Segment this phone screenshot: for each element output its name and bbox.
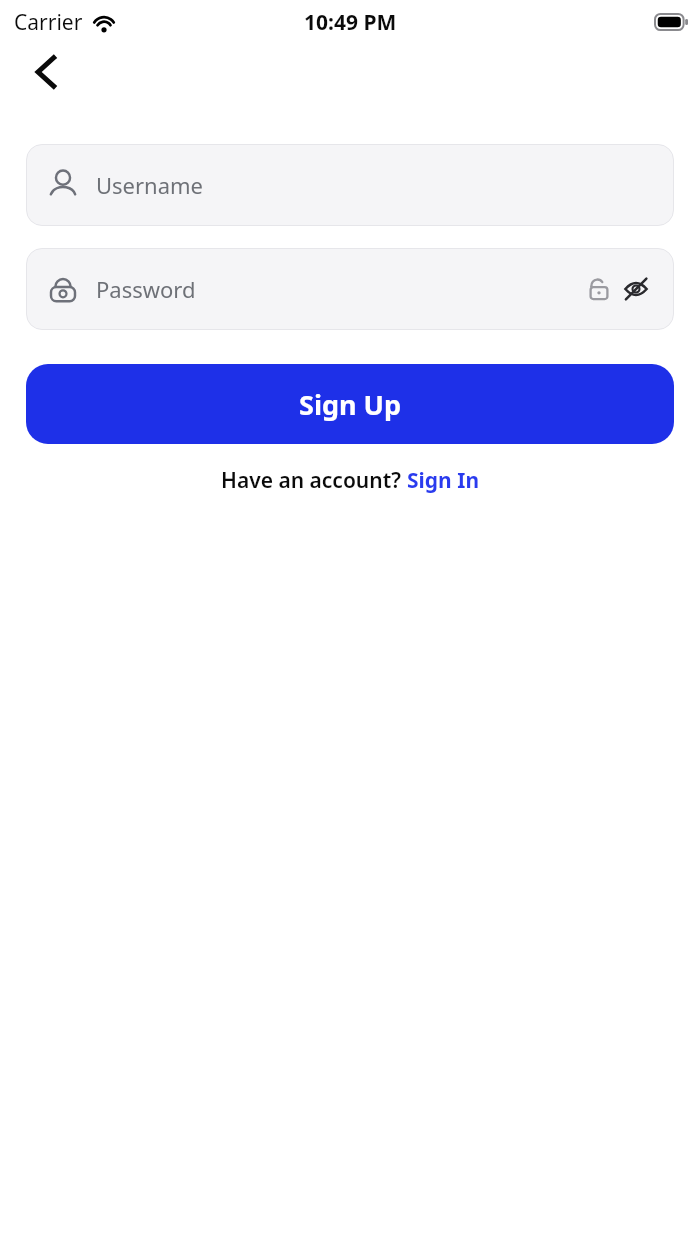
button[interactable]: Back (22, 48, 70, 96)
staticText: Password (96, 274, 196, 304)
button[interactable]: Sign Up (26, 364, 674, 444)
button[interactable]: Password (26, 248, 674, 330)
button[interactable]: Username (26, 144, 674, 226)
staticText: Have an account? (221, 466, 407, 495)
staticText: Sign In (407, 466, 480, 495)
staticText: 10:49 PM (304, 8, 397, 37)
staticText: Sign Up (299, 386, 402, 423)
button[interactable]: Sign In (407, 466, 480, 495)
staticText: Username (96, 170, 204, 200)
button[interactable]: Unlocked (584, 274, 614, 304)
button[interactable]: Show password (620, 273, 652, 305)
staticText: Carrier (14, 8, 83, 37)
